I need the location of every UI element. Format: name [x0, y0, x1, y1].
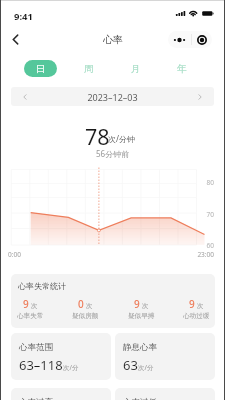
staticText: 次: [197, 302, 204, 310]
staticText: 2023–12–03: [39, 91, 186, 103]
staticText: 9:41: [14, 10, 33, 23]
button[interactable]: 心率范围: [11, 333, 111, 380]
staticText: 疑似早搏: [128, 312, 155, 320]
staticText: 80: [198, 178, 214, 187]
staticText: 日: [36, 63, 46, 75]
staticText: 次/分: [63, 363, 79, 372]
button[interactable]: 周: [72, 60, 105, 77]
button[interactable]: 静息心率: [115, 333, 215, 380]
staticText: 次/分钟: [108, 133, 135, 144]
button[interactable]: More options: [168, 31, 191, 48]
staticText: 心动过缓: [183, 312, 210, 320]
staticText: 心率范围: [19, 342, 53, 353]
staticText: 静息心率: [123, 342, 157, 353]
button[interactable]: 心率过高: [11, 388, 111, 400]
staticText: 次/分: [138, 363, 154, 372]
button[interactable]: 月: [119, 60, 152, 77]
staticText: 心率过高: [19, 397, 53, 400]
button[interactable]: 年: [165, 60, 198, 77]
staticText: 疑似房颤: [72, 312, 99, 320]
staticText: 9: [134, 297, 140, 311]
staticText: 9: [23, 297, 29, 311]
staticText: 56分钟前: [96, 148, 130, 159]
staticText: 心率失常统计: [18, 281, 66, 291]
staticText: 63: [123, 356, 138, 374]
staticText: 9: [189, 297, 195, 311]
staticText: 心率过低: [123, 397, 157, 400]
button[interactable]: Previous day: [11, 87, 39, 106]
button[interactable]: 心率过低: [115, 388, 215, 400]
staticText: 年: [177, 63, 187, 75]
staticText: 60: [198, 241, 214, 250]
staticText: 63–118: [19, 356, 63, 374]
staticText: 月: [131, 63, 141, 75]
staticText: 70: [198, 210, 214, 219]
button[interactable]: Back: [4, 28, 26, 50]
staticText: 周: [84, 63, 94, 75]
staticText: 0: [78, 297, 84, 311]
button[interactable]: Next day: [186, 87, 214, 106]
staticText: 心率: [103, 33, 123, 46]
staticText: 23:00: [184, 250, 214, 259]
staticText: 0:00: [8, 250, 21, 259]
button[interactable]: 日: [24, 60, 57, 77]
staticText: 次: [86, 302, 93, 310]
staticText: 78: [85, 122, 110, 151]
button[interactable]: Close: [192, 31, 212, 48]
staticText: 次: [142, 302, 149, 310]
staticText: 心率失常: [17, 312, 44, 320]
staticText: 次: [31, 302, 38, 310]
button[interactable]: 心率失常统计: [11, 274, 215, 328]
